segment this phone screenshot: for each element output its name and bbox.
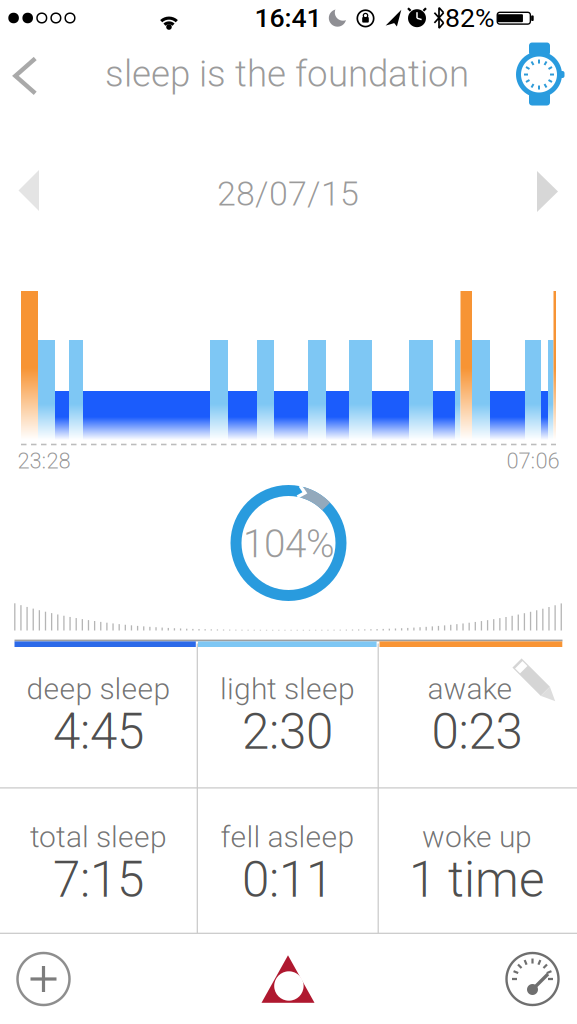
staticText: 23:28 [17, 448, 70, 474]
staticText: sleep is the foundation [105, 52, 469, 95]
staticText: 0:11 [242, 851, 333, 909]
button[interactable] [18, 170, 39, 211]
staticText: 4:45 [53, 703, 144, 761]
staticText: 0:23 [431, 703, 522, 761]
staticText: 28/07/15 [217, 174, 359, 214]
button[interactable] [504, 951, 560, 1007]
staticText: 104% [243, 521, 335, 567]
button[interactable] [514, 660, 558, 704]
button[interactable] [537, 171, 558, 212]
button[interactable] [513, 41, 565, 107]
staticText: 2:30 [242, 703, 333, 761]
staticText: light sleep [220, 671, 355, 707]
button[interactable] [11, 55, 41, 96]
staticText: deep sleep [26, 671, 170, 707]
staticText: woke up [422, 819, 532, 855]
button[interactable] [15, 951, 71, 1007]
staticText: fell asleep [220, 819, 354, 855]
staticText: 1 time [409, 851, 545, 909]
button[interactable] [256, 951, 320, 1007]
staticText: total sleep [30, 819, 167, 855]
staticText: 7:15 [53, 851, 144, 909]
staticText: 07:06 [506, 448, 559, 474]
staticText: awake [427, 671, 512, 707]
staticText: 82% [445, 2, 495, 34]
staticText: 16:41 [254, 2, 321, 34]
